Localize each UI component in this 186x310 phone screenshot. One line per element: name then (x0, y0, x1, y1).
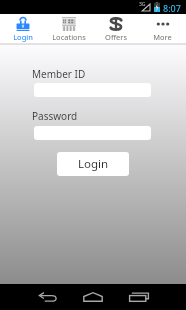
staticText: Password (32, 109, 78, 123)
button[interactable]: Locations (46, 14, 92, 43)
staticText: Member ID (32, 67, 86, 81)
staticText: More (153, 32, 172, 42)
staticText: 8:07 (163, 2, 181, 14)
staticText: Login (78, 156, 109, 172)
button[interactable]: Login (57, 152, 129, 176)
button[interactable]: Offers (92, 14, 139, 43)
button[interactable]: More (139, 14, 186, 43)
staticText: Login (13, 32, 33, 42)
button[interactable]: Recent apps (116, 284, 162, 310)
button[interactable]: Home (70, 284, 116, 310)
button[interactable]: Back (25, 284, 71, 310)
button[interactable]: Login (0, 14, 46, 43)
staticText: 3G (139, 1, 146, 8)
staticText: Locations (52, 32, 86, 42)
staticText: Offers (105, 32, 127, 42)
